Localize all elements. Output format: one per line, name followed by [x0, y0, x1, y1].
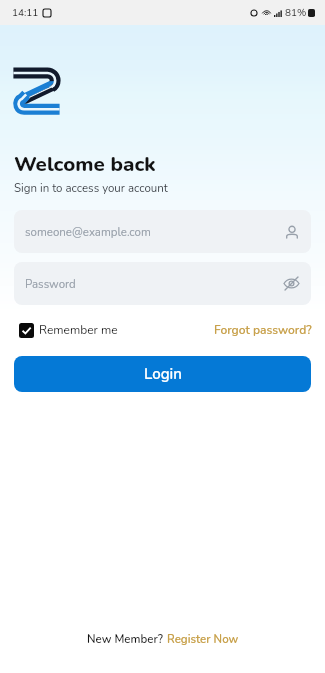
- other: Email address: [284, 224, 300, 240]
- button[interactable]: Remember me: [19, 322, 118, 338]
- staticText: Password: [25, 276, 76, 292]
- staticText: Sign in to access your account: [14, 180, 168, 196]
- button[interactable]: Register Now: [167, 631, 239, 647]
- staticText: Remember me: [39, 322, 118, 338]
- button[interactable]: Password: [14, 262, 311, 305]
- staticText: Register Now: [167, 631, 239, 647]
- staticText: 81%: [285, 6, 307, 20]
- staticText: someone@example.com: [25, 224, 151, 240]
- staticText: Welcome back: [14, 150, 156, 178]
- button[interactable]: Forgot password?: [214, 322, 312, 338]
- staticText: 14:11: [12, 6, 39, 20]
- staticText: Forgot password?: [214, 322, 312, 338]
- staticText: New Member?: [87, 631, 163, 647]
- other: Show password: [283, 275, 300, 292]
- staticText: Login: [144, 364, 182, 384]
- button[interactable]: someone@example.com: [14, 210, 311, 253]
- button[interactable]: Login: [14, 356, 311, 392]
